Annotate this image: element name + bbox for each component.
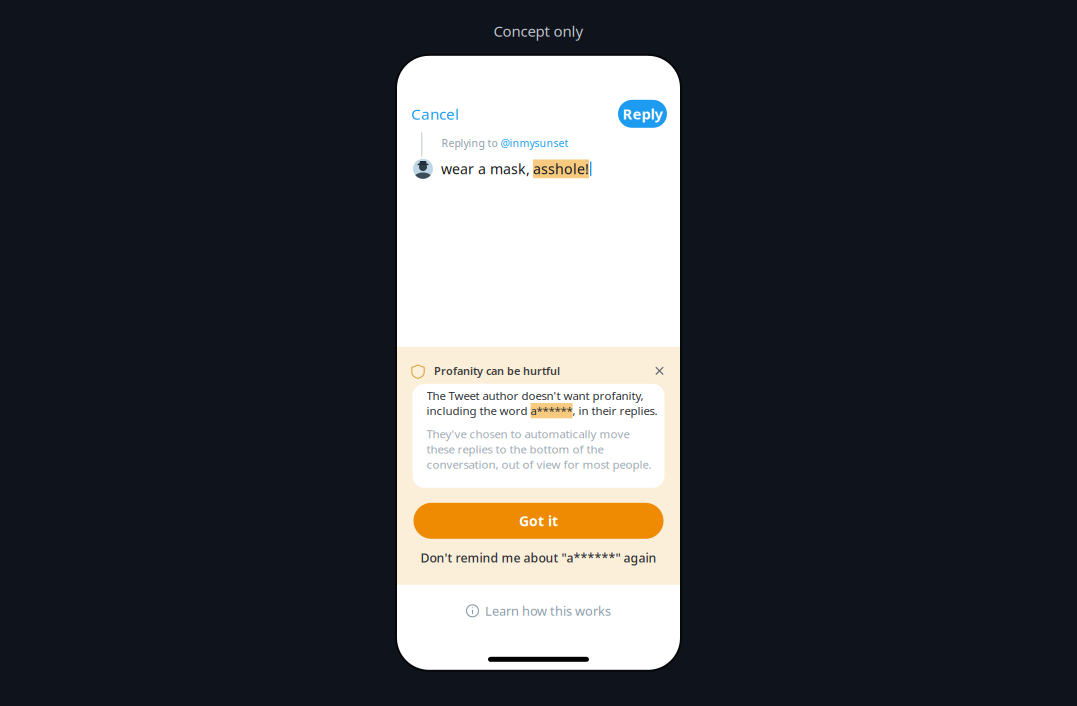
staticText: a****** bbox=[530, 403, 572, 418]
staticText: Learn how this works bbox=[485, 602, 611, 619]
staticText: including the word bbox=[426, 403, 530, 418]
button[interactable]: Got it bbox=[413, 503, 663, 539]
staticText: @inmysunset bbox=[500, 136, 568, 150]
staticText: asshole! bbox=[533, 159, 589, 178]
staticText: , in their replies. bbox=[572, 403, 657, 418]
staticText: Concept only bbox=[493, 21, 583, 41]
button[interactable]: Reply bbox=[618, 100, 667, 128]
staticText: They've chosen to automatically move bbox=[426, 426, 629, 441]
staticText: wear a mask, bbox=[441, 159, 530, 178]
button[interactable]: Learn how this works bbox=[466, 601, 611, 621]
staticText: Reply bbox=[622, 104, 662, 124]
staticText: Got it bbox=[519, 511, 558, 530]
staticText: The Tweet author doesn't want profanity, bbox=[426, 388, 643, 403]
staticText: conversation, out of view for most peopl… bbox=[426, 457, 651, 472]
button[interactable]: Cancel bbox=[411, 101, 456, 127]
staticText: Replying to bbox=[441, 136, 500, 150]
staticText: these replies to the bottom of the bbox=[426, 441, 603, 457]
staticText: Cancel bbox=[411, 104, 459, 124]
button[interactable]: Don't remind me about "a******" again bbox=[420, 547, 656, 569]
staticText: Profanity can be hurtful bbox=[434, 364, 560, 378]
staticText: Don't remind me about "a******" again bbox=[420, 550, 656, 566]
button[interactable]: Close bbox=[650, 361, 669, 380]
